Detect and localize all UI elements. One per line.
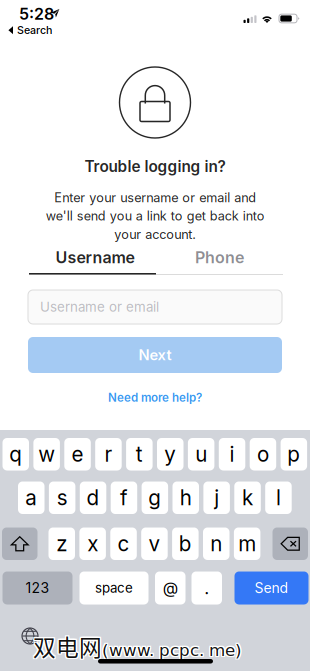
staticText: z [56, 531, 67, 556]
staticText: y [164, 442, 176, 467]
staticText: Trouble logging in? [84, 157, 225, 176]
staticText: 双电网 [33, 630, 102, 662]
staticText: r [104, 442, 112, 467]
button[interactable]: Search [8, 23, 68, 37]
staticText: b [179, 531, 192, 556]
button[interactable]: k [234, 481, 261, 514]
staticText: 双电网 [33, 631, 102, 664]
staticText: 双电网 [32, 631, 101, 664]
staticText: (www. pcpc. me) [102, 640, 242, 660]
button[interactable]: z [48, 527, 75, 560]
staticText: @ [163, 578, 178, 598]
staticText: h [180, 485, 192, 510]
staticText: 双电网 [34, 628, 103, 661]
staticText: (www. pcpc. me) [102, 642, 242, 661]
staticText: i [230, 442, 235, 467]
staticText: m [238, 531, 256, 556]
staticText: g [148, 485, 161, 510]
button[interactable]: s [49, 481, 75, 514]
staticText: 双电网 [32, 630, 101, 662]
staticText: Next [138, 346, 171, 364]
button[interactable]: g [142, 481, 168, 514]
button[interactable]: x [79, 527, 106, 560]
staticText: q [9, 442, 22, 467]
staticText: (www. pcpc. me) [102, 639, 242, 659]
staticText: a [25, 485, 37, 510]
staticText: 123 [25, 579, 49, 596]
staticText: . [204, 577, 209, 598]
button[interactable]: space [79, 571, 148, 604]
staticText: 5:28 [19, 4, 54, 24]
button[interactable]: r [95, 438, 122, 470]
button[interactable]: . [191, 571, 222, 604]
staticText: Send [254, 579, 288, 596]
button[interactable]: q [2, 438, 29, 470]
staticText: j [214, 485, 219, 510]
button[interactable]: b [172, 527, 199, 560]
staticText: Search [17, 23, 52, 36]
button[interactable]: j [203, 481, 230, 514]
staticText: l [276, 485, 281, 510]
staticText: v [148, 531, 160, 556]
staticText: x [87, 531, 98, 556]
button[interactable]: Delete [272, 527, 308, 560]
button[interactable]: v [141, 527, 168, 560]
button[interactable]: i [219, 438, 245, 470]
button[interactable]: f [111, 481, 137, 514]
staticText: (www. pcpc. me) [103, 639, 243, 659]
button[interactable]: t [126, 438, 153, 470]
staticText: w [38, 442, 55, 467]
button[interactable]: u [188, 438, 214, 470]
button[interactable]: p [281, 438, 307, 470]
staticText: 双电网 [33, 628, 102, 661]
button[interactable]: @ [155, 571, 185, 604]
staticText: 双电网 [32, 628, 101, 661]
staticText: f [120, 485, 128, 510]
button[interactable]: c [110, 527, 137, 560]
staticText: 双电网 [34, 630, 103, 662]
staticText: k [242, 485, 253, 510]
button[interactable]: 123 [2, 571, 72, 604]
staticText: (www. pcpc. me) [103, 642, 243, 661]
staticText: p [287, 442, 300, 467]
staticText: (www. pcpc. me) [101, 642, 241, 661]
button[interactable]: Shift [2, 527, 37, 560]
staticText: Username [55, 248, 134, 267]
staticText: (www. pcpc. me) [101, 640, 241, 660]
button[interactable]: n [203, 527, 229, 560]
staticText: 双电网 [34, 631, 103, 664]
button[interactable]: l [265, 481, 292, 514]
staticText: Phone [195, 248, 244, 267]
button[interactable]: Send [234, 571, 308, 604]
staticText: space [95, 580, 133, 596]
staticText: (www. pcpc. me) [101, 639, 241, 659]
button[interactable]: m [234, 527, 260, 560]
button[interactable]: h [172, 481, 199, 514]
staticText: d [86, 485, 99, 510]
staticText: u [195, 442, 207, 467]
button[interactable]: d [80, 481, 106, 514]
staticText: Need more help? [108, 390, 202, 404]
staticText: s [57, 485, 68, 510]
button[interactable]: a [18, 481, 44, 514]
button[interactable]: Username [31, 245, 159, 270]
staticText: t [136, 442, 143, 467]
staticText: c [117, 531, 129, 556]
staticText: (www. pcpc. me) [103, 640, 243, 660]
button[interactable]: Next [28, 337, 282, 373]
button[interactable]: y [157, 438, 183, 470]
staticText: o [257, 442, 269, 467]
staticText: n [210, 531, 222, 556]
staticText: e [71, 442, 83, 467]
button[interactable]: w [33, 438, 60, 470]
staticText: Enter your username or email and we'll s… [45, 190, 264, 242]
staticText: Username or email [40, 299, 159, 315]
button[interactable]: Need more help? [0, 390, 310, 405]
button[interactable]: e [64, 438, 91, 470]
button[interactable]: o [250, 438, 276, 470]
button[interactable]: Phone [156, 245, 283, 270]
button[interactable]: Switch keyboard [22, 628, 38, 644]
